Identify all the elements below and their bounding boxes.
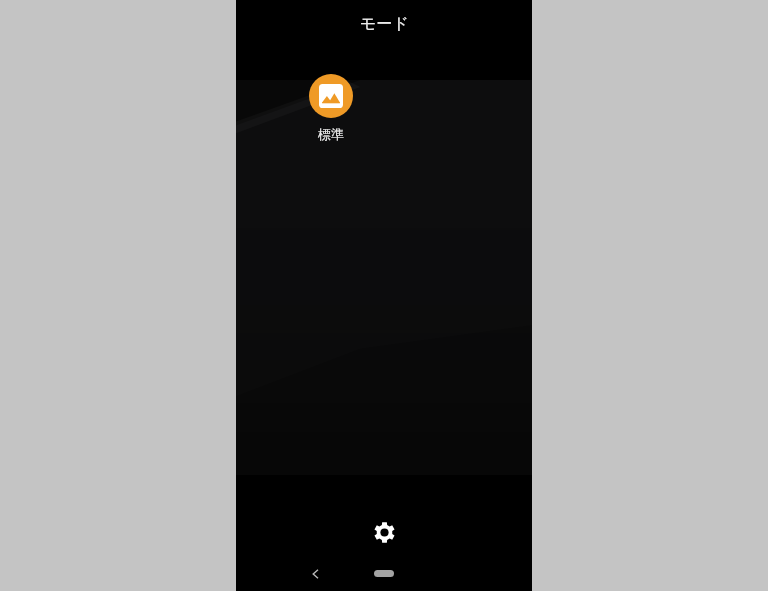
button[interactable]: 標準 mode	[309, 74, 353, 118]
staticText: モード	[360, 14, 409, 34]
button[interactable]: Home	[374, 570, 394, 577]
button[interactable]: Settings	[366, 514, 402, 550]
staticText: 標準	[318, 126, 344, 142]
button[interactable]: Back	[299, 558, 331, 590]
